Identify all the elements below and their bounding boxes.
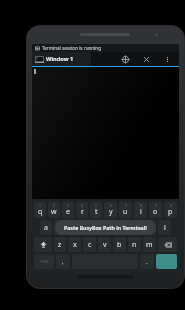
- button[interactable]: 6: [104, 202, 117, 218]
- button[interactable]: Enter: [156, 254, 177, 269]
- button[interactable]: Shift: [34, 237, 52, 252]
- button[interactable]: l: [158, 220, 171, 235]
- button[interactable]: z: [54, 237, 66, 252]
- button[interactable]: Comma: [56, 254, 70, 269]
- button[interactable]: Symbols: [34, 254, 54, 269]
- staticText: c: [88, 240, 92, 250]
- button[interactable]: 8: [134, 202, 147, 218]
- staticText: y: [109, 207, 113, 217]
- button[interactable]: n: [128, 237, 141, 252]
- staticText: d: [72, 223, 77, 233]
- staticText: b: [117, 240, 122, 250]
- staticText: f: [88, 223, 91, 233]
- staticText: h: [117, 223, 122, 233]
- button[interactable]: j: [128, 220, 141, 235]
- button[interactable]: Close window: [140, 53, 152, 65]
- staticText: 6: [110, 203, 112, 208]
- button[interactable]: Paste BusyBox Path in Terminal!: [55, 220, 156, 235]
- staticText: n: [132, 240, 137, 250]
- button[interactable]: 1: [34, 202, 46, 218]
- staticText: x: [73, 240, 77, 250]
- staticText: m: [146, 240, 153, 250]
- staticText: a: [44, 223, 48, 233]
- staticText: e: [66, 207, 70, 217]
- button[interactable]: g: [98, 220, 111, 235]
- button[interactable]: 7: [119, 202, 132, 218]
- button[interactable]: s: [54, 220, 66, 235]
- button[interactable]: Period: [140, 254, 154, 269]
- staticText: Terminal session is running: [42, 45, 102, 51]
- staticText: Window 1: [46, 55, 74, 63]
- staticText: v: [103, 240, 107, 250]
- button[interactable]: m: [143, 237, 156, 252]
- button[interactable]: h: [113, 220, 126, 235]
- button[interactable]: d: [68, 220, 81, 235]
- staticText: 3: [67, 203, 69, 208]
- button[interactable]: 3: [62, 202, 74, 218]
- staticText: w: [51, 207, 57, 217]
- staticText: o: [153, 207, 158, 217]
- staticText: u: [123, 207, 128, 217]
- staticText: 7: [125, 203, 127, 208]
- staticText: t: [95, 207, 98, 217]
- staticText: ?123: [40, 259, 49, 264]
- button[interactable]: 2: [48, 202, 60, 218]
- staticText: .: [146, 258, 148, 266]
- staticText: 2: [53, 203, 55, 208]
- staticText: 0: [170, 203, 172, 208]
- staticText: 1: [39, 203, 41, 208]
- button[interactable]: v: [98, 237, 111, 252]
- button[interactable]: New window: [119, 53, 131, 65]
- staticText: Paste BusyBox Path in Terminal!: [64, 224, 147, 231]
- staticText: 9: [155, 203, 157, 208]
- staticText: ,: [62, 258, 64, 266]
- button[interactable]: k: [143, 220, 156, 235]
- button[interactable]: Backspace: [158, 237, 177, 252]
- button[interactable]: c: [83, 237, 96, 252]
- button[interactable]: a: [40, 220, 52, 235]
- button[interactable]: More options: [161, 53, 173, 65]
- staticText: 5: [95, 203, 97, 208]
- button[interactable]: f: [83, 220, 96, 235]
- staticText: i: [140, 207, 142, 217]
- button[interactable]: 9: [149, 202, 162, 218]
- button[interactable]: 0: [164, 202, 177, 218]
- button[interactable]: Window 1: [32, 52, 91, 66]
- staticText: q: [38, 207, 43, 217]
- button[interactable]: b: [113, 237, 126, 252]
- staticText: l: [164, 223, 166, 233]
- staticText: 4: [81, 203, 83, 208]
- staticText: z: [58, 240, 62, 250]
- staticText: 8: [140, 203, 142, 208]
- staticText: g: [102, 223, 107, 233]
- button[interactable]: 5: [90, 202, 102, 218]
- button[interactable]: 4: [76, 202, 88, 218]
- staticText: j: [134, 223, 136, 233]
- button[interactable]: x: [68, 237, 81, 252]
- staticText: p: [168, 207, 173, 217]
- staticText: r: [81, 207, 84, 217]
